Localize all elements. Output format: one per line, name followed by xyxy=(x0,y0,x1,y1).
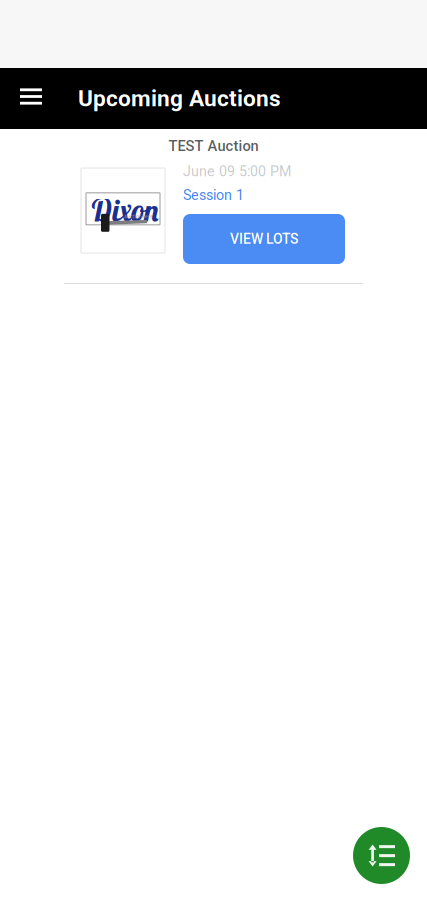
staticText: Upcoming Auctions xyxy=(78,85,281,112)
staticText: VIEW LOTS xyxy=(230,231,298,247)
staticText: Dixon xyxy=(90,191,160,229)
button[interactable]: Open navigation menu xyxy=(0,68,62,129)
staticText: TEST Auction xyxy=(168,137,258,155)
staticText: June 09 5:00 PM xyxy=(183,163,291,180)
button[interactable]: VIEW LOTS xyxy=(183,214,345,264)
staticText: auctioneers xyxy=(124,214,152,219)
button[interactable]: Session 1 xyxy=(183,183,345,207)
button[interactable]: Sort auctions xyxy=(353,827,410,884)
staticText: Session 1 xyxy=(183,187,244,203)
